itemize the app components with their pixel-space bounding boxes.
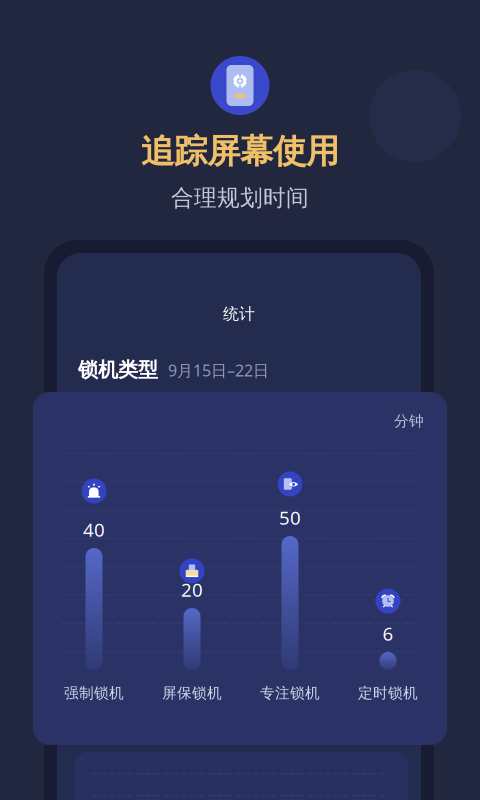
staticText: 专注锁机 xyxy=(260,684,320,702)
staticText: 屏保锁机 xyxy=(162,684,222,702)
staticText: 强制锁机 xyxy=(64,684,124,702)
staticText: 6 xyxy=(382,621,393,646)
staticText: 追踪屏幕使用 xyxy=(141,131,339,172)
staticText: 统计 xyxy=(223,304,255,324)
staticText: 锁机类型 xyxy=(78,358,158,382)
staticText: 分钟 xyxy=(394,412,424,430)
staticText: 合理规划时间 xyxy=(171,184,309,212)
staticText: 9月15日–22日 xyxy=(168,360,269,381)
staticText: 50 xyxy=(279,505,301,530)
staticText: 定时锁机 xyxy=(358,684,418,702)
staticText: 40 xyxy=(83,517,105,542)
staticText: 20 xyxy=(181,577,203,602)
